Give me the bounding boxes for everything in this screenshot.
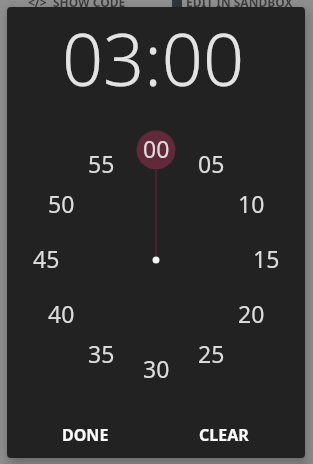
staticText: EDIT IN SANDBOX [186,0,293,10]
staticText: 45 [33,243,60,274]
button[interactable]: 30 [137,353,175,384]
staticText: 55 [88,148,115,179]
staticText: 03:00 [62,9,245,107]
staticText: 15 [253,243,280,274]
staticText: 20 [238,298,265,329]
staticText: 35 [88,338,115,369]
button[interactable]: 55 [82,148,120,179]
button[interactable]: 00 [137,133,175,164]
button[interactable]: 10 [232,188,270,219]
button[interactable]: 25 [192,338,230,369]
staticText: 50 [48,188,75,219]
staticText: 05 [198,148,225,179]
button[interactable]: 15 [247,243,285,274]
button[interactable]: 35 [82,338,120,369]
staticText: 10 [238,188,265,219]
staticText: 00 [143,133,170,164]
staticText: 25 [198,338,225,369]
button[interactable]: 05 [192,148,230,179]
button[interactable]: DONE [55,417,115,452]
button[interactable]: CLEAR [191,417,257,452]
staticText: </> SHOW CODE [28,0,126,10]
staticText: DONE [62,424,109,446]
staticText: CLEAR [199,424,249,446]
staticText: 30 [143,353,170,384]
button[interactable]: 20 [232,298,270,329]
staticText: 40 [48,298,75,329]
button[interactable]: 45 [27,243,65,274]
button[interactable]: 50 [42,188,80,219]
button[interactable]: 40 [42,298,80,329]
